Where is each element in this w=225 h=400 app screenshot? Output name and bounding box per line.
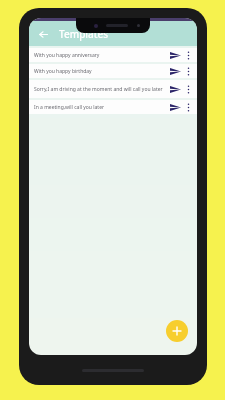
staticText: With you happy birthday bbox=[34, 68, 92, 75]
button[interactable]: Send bbox=[167, 64, 183, 78]
button[interactable]: More options bbox=[183, 100, 193, 114]
staticText: Sorry,I am driving at the moment and wil… bbox=[34, 86, 163, 93]
button[interactable]: In a meeting,will call you later bbox=[29, 100, 197, 114]
button[interactable]: With you happy birthday bbox=[29, 64, 197, 78]
button[interactable]: Send bbox=[167, 100, 183, 114]
button[interactable]: Send bbox=[167, 48, 183, 62]
button[interactable]: More options bbox=[183, 64, 193, 78]
button[interactable]: More options bbox=[183, 82, 193, 96]
button[interactable]: Add template bbox=[166, 320, 188, 342]
button[interactable]: Send bbox=[167, 82, 183, 96]
button[interactable]: Back bbox=[33, 24, 53, 44]
button[interactable]: With you happy anniversary bbox=[29, 48, 197, 62]
button[interactable]: More options bbox=[183, 48, 193, 62]
staticText: In a meeting,will call you later bbox=[34, 104, 105, 111]
staticText: With you happy anniversary bbox=[34, 52, 100, 59]
staticText: Templates bbox=[59, 27, 109, 41]
button[interactable]: Sorry,I am driving at the moment and wil… bbox=[29, 80, 197, 98]
